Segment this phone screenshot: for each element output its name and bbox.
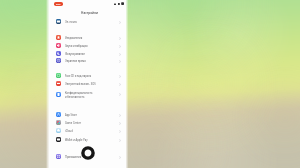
button[interactable]: Экстренный вызов - SOS: [49, 80, 126, 88]
button[interactable]: iCloud: [49, 127, 126, 135]
staticText: Face ID и код-пароль: [65, 74, 92, 78]
staticText: Настройки: [81, 11, 98, 15]
other: Status icons: [114, 2, 124, 5]
button[interactable]: Wallet и Apple Pay: [49, 136, 126, 144]
staticText: Звуки и вибрация: [65, 44, 88, 48]
button[interactable]: Touch indicator: [81, 146, 95, 160]
staticText: 9:41: [56, 3, 61, 6]
staticText: iCloud: [65, 129, 73, 133]
button[interactable]: Уведомления: [49, 34, 126, 42]
button[interactable]: Recording indicator: [54, 2, 63, 6]
button[interactable]: Эл. почта: [49, 18, 126, 26]
staticText: Приложения: [65, 155, 82, 159]
button[interactable]: Game Center: [49, 119, 126, 127]
staticText: Game Center: [65, 121, 82, 125]
staticText: Wallet и Apple Pay: [65, 138, 88, 142]
button[interactable]: Приложения: [49, 153, 126, 161]
staticText: Уведомления: [65, 36, 83, 40]
staticText: Конфиденциальность и безопасность: [65, 91, 93, 99]
staticText: Эл. почта: [65, 20, 77, 24]
button[interactable]: Фокусирование: [49, 50, 126, 58]
button[interactable]: App Store: [49, 111, 126, 119]
staticText: Экстренный вызов - SOS: [65, 82, 96, 86]
button[interactable]: Звуки и вибрация: [49, 42, 126, 50]
button[interactable]: Face ID и код-пароль: [49, 72, 126, 80]
staticText: Фокусирование: [65, 52, 85, 56]
button[interactable]: Конфиденциальность и безопасность: [49, 90, 126, 99]
button[interactable]: Экранное время: [49, 57, 126, 65]
staticText: App Store: [65, 113, 77, 117]
staticText: Экранное время: [65, 59, 86, 63]
